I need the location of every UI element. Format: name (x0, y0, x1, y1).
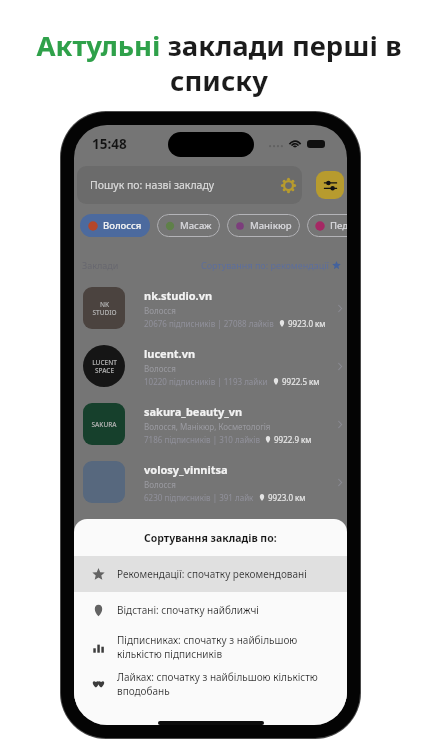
staticText: 9923.0 км (288, 318, 326, 329)
staticText: 10220 підписників | 1193 лайки (144, 376, 268, 387)
staticText: 15:48 (92, 135, 127, 153)
staticText: Волосся (144, 305, 176, 316)
staticText: Волосся (144, 479, 176, 490)
staticText: Актульні заклади перші в списку (26, 27, 412, 100)
staticText: lucent.vn (144, 346, 196, 361)
staticText: Манікюр (250, 219, 292, 232)
button[interactable]: Підписниках: спочатку з найбільшою кільк… (74, 628, 347, 666)
staticText: Волосся, Манікюр, Косметологія (144, 421, 271, 432)
staticText: Волосся (103, 219, 142, 232)
staticText: Рекомендації: спочатку рекомендовані (117, 567, 307, 581)
staticText: Педикюр (330, 219, 347, 232)
button[interactable]: Масаж (157, 214, 220, 237)
button[interactable]: volosy_vinnitsa (74, 453, 347, 511)
button[interactable]: Фільтри (316, 171, 344, 199)
staticText: 20676 підписників | 27088 лайків (144, 318, 274, 329)
button[interactable]: Волосся (80, 214, 150, 237)
staticText: sakura_beauty_vn (144, 404, 243, 419)
staticText: 9922.9 км (274, 434, 312, 445)
button[interactable]: LUCENT SPACE (74, 337, 347, 395)
staticText: Пошук по: назві закладу (90, 178, 215, 192)
button[interactable]: Манікюр (227, 214, 300, 237)
button[interactable]: Педикюр (307, 214, 347, 237)
staticText: Відстані: спочатку найближчі (117, 603, 259, 617)
staticText: SAKURA (91, 420, 117, 429)
button[interactable]: Рекомендації: спочатку рекомендовані (74, 556, 347, 592)
button[interactable]: Лайках: спочатку з найбільшою кількістю … (74, 666, 347, 702)
staticText: Масаж (180, 219, 212, 232)
staticText: 7186 підписників | 310 лайків (144, 434, 260, 445)
button[interactable]: Відстані: спочатку найближчі (74, 592, 347, 628)
staticText: Підписниках: спочатку з найбільшою кільк… (117, 633, 298, 661)
staticText: 9923.0 км (268, 492, 306, 503)
staticText: NK STUDIO (92, 300, 117, 317)
button[interactable]: Сортування по: рекомендації (201, 259, 341, 271)
button[interactable]: SAKURA (74, 395, 347, 453)
button[interactable]: Пошук по: назві закладу (77, 166, 302, 204)
staticText: Сортування закладів по: (144, 531, 277, 545)
staticText: Лайках: спочатку з найбільшою кількістю … (117, 670, 318, 698)
staticText: LUCENT SPACE (92, 358, 117, 375)
staticText: 6230 підписників | 391 лайк (144, 492, 254, 503)
button[interactable]: NK STUDIO (74, 279, 347, 337)
staticText: Заклади (82, 259, 119, 271)
staticText: volosy_vinnitsa (144, 462, 228, 477)
staticText: Сортування по: рекомендації (201, 259, 329, 271)
staticText: nk.studio.vn (144, 288, 213, 303)
staticText: Волосся (144, 363, 176, 374)
staticText: 9922.5 км (282, 376, 320, 387)
